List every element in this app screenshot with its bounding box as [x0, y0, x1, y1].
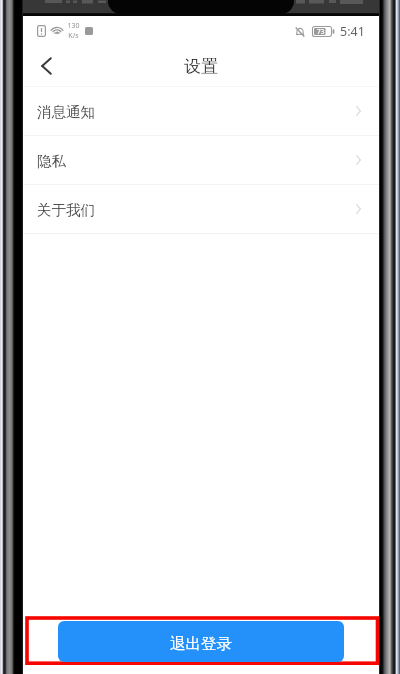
button[interactable]: 消息通知 [23, 87, 379, 136]
staticText: 消息通知 [37, 103, 95, 121]
button[interactable]: 关于我们 [23, 185, 379, 234]
button[interactable]: 隐私 [23, 136, 379, 185]
staticText: 隐私 [37, 152, 66, 170]
staticText: 73 [317, 27, 325, 36]
staticText: K/s [68, 31, 79, 41]
button[interactable]: Back [23, 44, 67, 87]
staticText: 关于我们 [37, 201, 95, 219]
staticText: 130 [67, 21, 80, 31]
button[interactable]: 退出登录 [58, 621, 344, 662]
staticText: 退出登录 [170, 634, 232, 654]
staticText: 5:41 [340, 23, 365, 40]
staticText: 设置 [184, 56, 218, 77]
